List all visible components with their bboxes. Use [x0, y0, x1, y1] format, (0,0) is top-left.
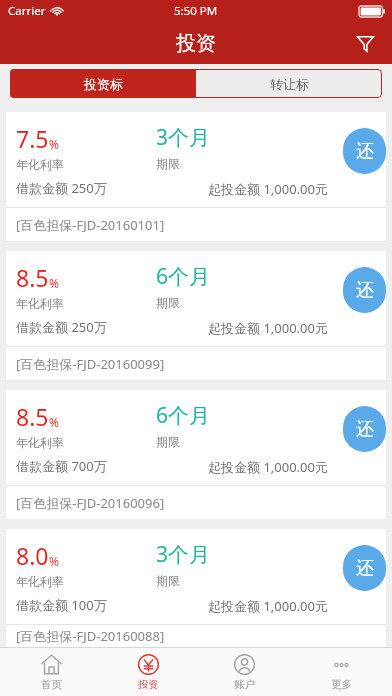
button[interactable]: 投资标: [10, 69, 196, 98]
staticText: 期限: [156, 295, 180, 310]
staticText: 更多: [331, 678, 352, 691]
staticText: 投资: [176, 31, 216, 56]
button[interactable]: 8.0: [6, 529, 386, 647]
staticText: 年化利率: [16, 574, 64, 589]
button[interactable]: 首页: [5, 649, 97, 695]
staticText: [百色担保-FJD-20160099]: [16, 355, 165, 373]
button[interactable]: Filter: [348, 26, 382, 60]
staticText: 借款金额 250万: [16, 318, 107, 336]
staticText: [百色担保-FJD-20160088]: [16, 627, 165, 645]
staticText: 起投金额 1,000.00元: [208, 319, 328, 337]
button[interactable]: 还: [343, 267, 386, 313]
button[interactable]: 更多: [295, 649, 387, 695]
staticText: 起投金额 1,000.00元: [208, 458, 328, 476]
staticText: %: [49, 553, 59, 569]
button[interactable]: 8.5: [6, 390, 386, 519]
button[interactable]: 账户: [198, 649, 290, 695]
staticText: Carrier: [8, 3, 46, 19]
staticText: [百色担保-FJD-20160101]: [16, 216, 165, 234]
staticText: 3个月: [156, 540, 211, 569]
staticText: %: [49, 275, 59, 291]
staticText: %: [49, 136, 59, 152]
staticText: 6个月: [156, 401, 211, 430]
button[interactable]: 还: [343, 545, 386, 591]
staticText: 投资: [138, 678, 159, 691]
button[interactable]: 8.5: [6, 251, 386, 380]
staticText: 8.5: [16, 262, 49, 293]
staticText: 6个月: [156, 262, 211, 291]
staticText: 借款金额 100万: [16, 596, 107, 614]
staticText: 年化利率: [16, 296, 64, 311]
staticText: 起投金额 1,000.00元: [208, 597, 328, 615]
staticText: %: [49, 414, 59, 430]
staticText: 还: [356, 557, 374, 580]
staticText: 年化利率: [16, 157, 64, 172]
staticText: 还: [356, 140, 374, 163]
staticText: 7.5: [16, 123, 49, 154]
staticText: 5:50 PM: [174, 3, 218, 19]
button[interactable]: 7.5: [6, 112, 386, 241]
staticText: 转让标: [270, 76, 309, 92]
staticText: 期限: [156, 156, 180, 171]
staticText: 8.5: [16, 401, 49, 432]
button[interactable]: 投资: [102, 649, 194, 695]
staticText: 3个月: [156, 123, 211, 152]
button[interactable]: 转让标: [196, 69, 382, 98]
staticText: [百色担保-FJD-20160096]: [16, 494, 165, 512]
staticText: 还: [356, 279, 374, 302]
staticText: 还: [356, 418, 374, 441]
staticText: 借款金额 700万: [16, 457, 107, 475]
staticText: 投资标: [84, 76, 123, 92]
staticText: 借款金额 250万: [16, 179, 107, 197]
staticText: 首页: [41, 678, 62, 691]
staticText: 期限: [156, 434, 180, 449]
staticText: 8.0: [16, 540, 49, 571]
button[interactable]: 还: [343, 406, 386, 452]
button[interactable]: 还: [343, 128, 386, 174]
staticText: 年化利率: [16, 435, 64, 450]
staticText: 期限: [156, 573, 180, 588]
staticText: 账户: [234, 678, 255, 691]
staticText: 起投金额 1,000.00元: [208, 180, 328, 198]
